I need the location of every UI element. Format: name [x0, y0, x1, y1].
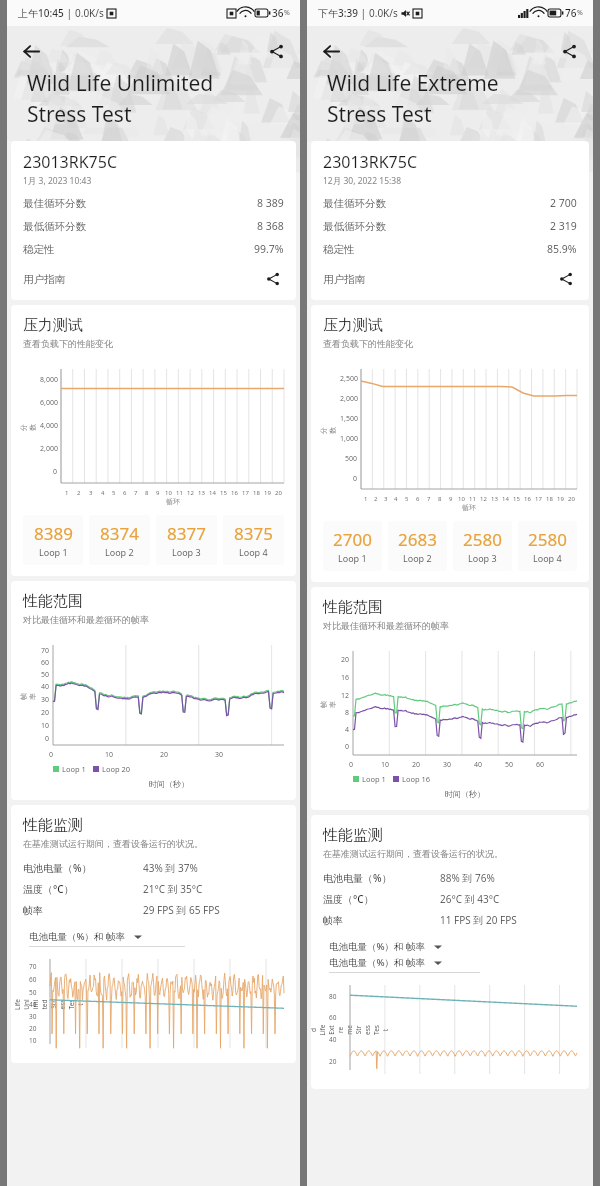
staticText: 30 [41, 695, 50, 705]
staticText: 6 [416, 495, 420, 503]
button[interactable]: 电池电量（%）和 帧率 [329, 940, 577, 953]
staticText: 在基准测试运行期间，查看设备运行的状况。 [323, 848, 503, 859]
staticText: 17 [535, 495, 542, 503]
staticText: 电池电量（%）和 帧率 [29, 930, 126, 943]
staticText: 性能监测 [323, 826, 383, 845]
staticText: 对比最佳循环和最差循环的帧率 [323, 620, 449, 631]
button[interactable]: Share [261, 36, 291, 66]
staticText: 36 [272, 6, 284, 20]
staticText: 8 368 [257, 219, 284, 233]
staticText: Loop 4 [533, 552, 562, 564]
staticText: 在基准测试运行期间，查看设备运行的状况。 [23, 838, 203, 849]
button[interactable]: Back [316, 36, 346, 66]
staticText: 14 [209, 489, 216, 497]
staticText: 2 319 [550, 219, 577, 233]
staticText: 性能范围 [323, 598, 383, 617]
button[interactable]: Share result [555, 268, 577, 290]
staticText: 最佳循环分数 [323, 197, 386, 210]
staticText: 76 [565, 6, 577, 20]
staticText: 9 [156, 489, 160, 497]
staticText: 16 [341, 673, 350, 683]
staticText: 5 [112, 489, 116, 497]
staticText: 2700 [333, 528, 372, 551]
staticText: 分数 [319, 424, 337, 434]
staticText: 性能范围 [23, 592, 83, 611]
staticText: 15 [220, 489, 227, 497]
staticText: 0 [45, 734, 50, 744]
staticText: | [358, 6, 369, 20]
staticText: 60 [329, 1013, 337, 1022]
staticText: 1 [65, 489, 69, 497]
staticText: 3 [89, 489, 93, 497]
staticText: 2 [374, 495, 378, 503]
staticText: 30 [443, 760, 452, 770]
staticText: 19 [264, 489, 271, 497]
staticText: 对比最佳循环和最差循环的帧率 [23, 614, 149, 625]
staticText: Loop 16 [402, 774, 431, 784]
button[interactable]: 8377 [156, 515, 217, 565]
button[interactable]: 8374 [89, 515, 150, 565]
button[interactable]: Share [554, 36, 584, 66]
staticText: 9 [449, 495, 453, 503]
staticText: 12 [187, 489, 194, 497]
staticText: Stress Test [327, 100, 432, 129]
staticText: 8389 [34, 522, 73, 545]
staticText: 电池电量（%） [323, 871, 392, 885]
staticText: 20 [329, 1057, 337, 1066]
staticText: 16 [231, 489, 238, 497]
staticText: 7 [427, 495, 431, 503]
staticText: Wild Life Extreme [327, 69, 499, 98]
staticText: Loop 1 [338, 552, 367, 564]
button[interactable]: 8375 [223, 515, 284, 565]
staticText: Loop 1 [362, 774, 386, 784]
staticText: 4 [101, 489, 105, 497]
staticText: 6,000 [40, 398, 58, 408]
staticText: 60 [536, 760, 545, 770]
staticText: 2 700 [550, 196, 577, 210]
staticText: Loop 3 [468, 552, 497, 564]
staticText: % [577, 8, 583, 18]
staticText: 6 [123, 489, 127, 497]
staticText: 循环 [166, 497, 180, 506]
staticText: 10 [458, 495, 465, 503]
staticText: 8 389 [257, 196, 284, 210]
staticText: 上午10:45 [18, 6, 64, 20]
staticText: 11 FPS 到 20 FPS [440, 913, 517, 927]
staticText: 查看负载下的性能变化 [323, 338, 413, 349]
staticText: 30 [215, 750, 224, 760]
staticText: 99.7% [254, 242, 284, 256]
staticText: 循环 [462, 503, 476, 512]
button[interactable]: 电池电量（%）和 帧率 [329, 956, 577, 969]
staticText: 0 [349, 760, 354, 770]
button[interactable]: 2683 [388, 521, 447, 571]
staticText: 40 [41, 682, 50, 692]
button[interactable]: 2580 [518, 521, 577, 571]
staticText: 0 [353, 474, 358, 484]
staticText: 16 [524, 495, 531, 503]
staticText: 18 [546, 495, 553, 503]
staticText: 用户指南 [323, 273, 365, 286]
button[interactable]: Share result [262, 268, 284, 290]
button[interactable]: 2580 [453, 521, 512, 571]
button[interactable]: 2700 [323, 521, 382, 571]
button[interactable]: 电池电量（%）和 帧率 [29, 930, 284, 943]
staticText: 12月 30, 2022 15:38 [323, 175, 402, 187]
staticText: 时间（秒） [149, 779, 189, 789]
staticText: 40 [29, 1000, 37, 1009]
button[interactable]: 8389 [23, 515, 83, 565]
button[interactable]: 用户指南 [323, 268, 577, 290]
staticText: 50 [41, 670, 50, 680]
staticText: 23013RK75C [23, 151, 118, 173]
staticText: 11 [176, 489, 183, 497]
staticText: 21°C 到 35°C [143, 882, 203, 896]
staticText: Loop 1 [62, 764, 86, 774]
button[interactable]: 用户指南 [23, 268, 284, 290]
staticText: 85.9% [547, 242, 577, 256]
button[interactable]: Back [16, 36, 46, 66]
staticText: 8,000 [40, 375, 58, 385]
staticText: 40 [329, 1035, 337, 1044]
staticText: 用户指南 [23, 273, 65, 286]
staticText: 19 [557, 495, 564, 503]
staticText: 查看负载下的性能变化 [23, 338, 113, 349]
staticText: 60 [41, 658, 50, 668]
